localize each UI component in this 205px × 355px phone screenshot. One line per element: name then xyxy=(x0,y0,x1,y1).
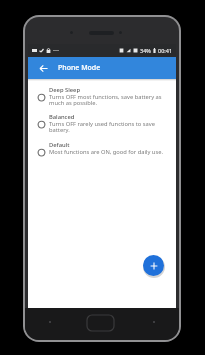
button[interactable]: Add xyxy=(143,255,164,276)
staticText: Default xyxy=(49,141,70,149)
staticText: Phone Mode xyxy=(58,63,101,73)
staticText: Balanced xyxy=(49,113,75,121)
button[interactable]: Balanced xyxy=(28,113,176,141)
staticText: Turns OFF most functions, save battery a… xyxy=(49,93,168,107)
staticText: Most functions are ON, good for daily us… xyxy=(49,148,163,156)
button[interactable]: Default xyxy=(28,141,176,169)
button[interactable]: Back xyxy=(33,57,53,79)
staticText: Turns OFF rarely used functions to save … xyxy=(49,120,168,134)
staticText: 00:41 xyxy=(158,47,173,54)
staticText: Deep Sleep xyxy=(49,86,80,94)
staticText: 34% xyxy=(140,47,151,54)
button[interactable]: Deep Sleep xyxy=(28,86,176,114)
